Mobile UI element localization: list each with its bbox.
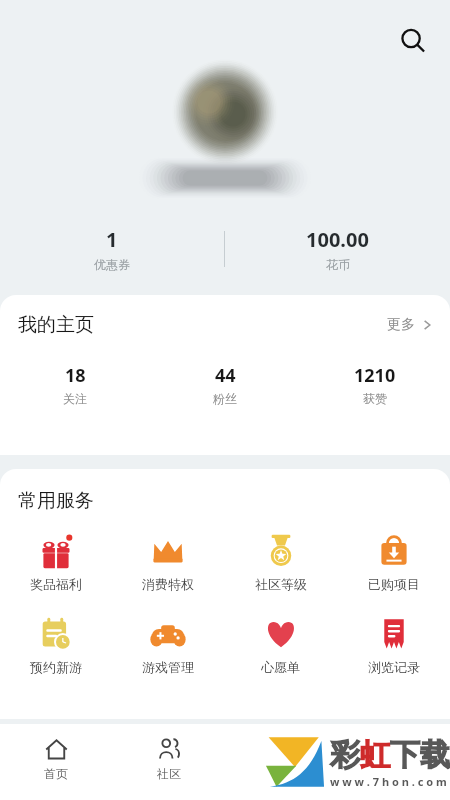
staticText: 消费特权: [142, 576, 194, 592]
staticText: 关注: [63, 391, 87, 406]
staticText: 粉丝: [213, 391, 237, 406]
staticText: 获赞: [363, 391, 387, 406]
staticText: 奖品福利: [30, 576, 82, 592]
button[interactable]: 1210: [300, 363, 450, 406]
staticText: 18: [65, 363, 86, 388]
staticText: 社区: [157, 766, 181, 781]
button[interactable]: 心愿单: [224, 614, 337, 677]
staticText: 1: [106, 226, 118, 253]
staticText: 我的主页: [18, 313, 94, 337]
button[interactable]: 奖品福利: [0, 531, 112, 594]
staticText: 更多: [387, 316, 415, 334]
staticText: 彩: [330, 736, 360, 774]
staticText: 花币: [326, 257, 350, 272]
staticText: 常用服务: [18, 489, 94, 513]
staticText: 首页: [44, 766, 68, 781]
button[interactable]: 消费特权: [112, 531, 224, 594]
staticText: 浏览记录: [368, 659, 420, 675]
staticText: 社区等级: [255, 576, 307, 592]
button[interactable]: 18: [0, 363, 150, 406]
staticText: w w w . 7 h o n . c o m: [330, 774, 447, 789]
staticText: 虹: [360, 736, 390, 774]
staticText: 1210: [354, 363, 396, 388]
button[interactable]: 1: [0, 226, 224, 272]
button[interactable]: 我的主页: [18, 313, 434, 337]
staticText: 心愿单: [261, 659, 300, 675]
button[interactable]: 社区: [112, 724, 225, 781]
staticText: 100.00: [306, 226, 369, 253]
staticText: 已购项目: [368, 576, 420, 592]
button[interactable]: 预约新游: [0, 614, 112, 677]
button[interactable]: 100.00: [225, 226, 450, 272]
staticText: 44: [215, 363, 236, 388]
button[interactable]: 游戏管理: [112, 614, 224, 677]
staticText: 预约新游: [30, 659, 82, 675]
staticText: 游戏管理: [142, 659, 194, 675]
button[interactable]: 浏览记录: [337, 614, 450, 677]
button[interactable]: 已购项目: [337, 531, 450, 594]
staticText: 下载: [390, 736, 450, 774]
button[interactable]: Search: [390, 18, 436, 64]
staticText: 优惠券: [94, 257, 130, 272]
button[interactable]: 首页: [0, 724, 112, 781]
button[interactable]: 44: [150, 363, 300, 406]
button[interactable]: 社区等级: [224, 531, 337, 594]
